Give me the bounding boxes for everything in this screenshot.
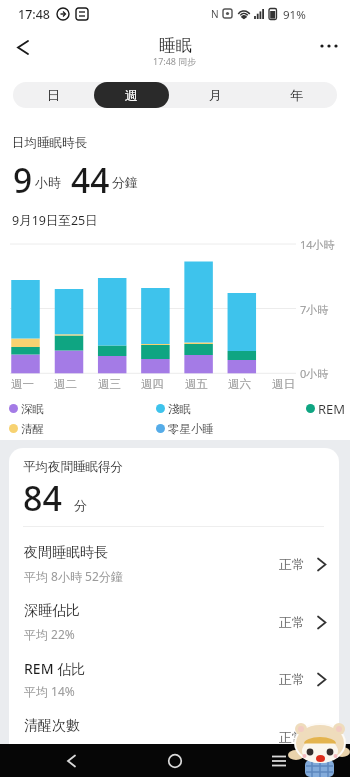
staticText: 正常 — [279, 614, 305, 630]
staticText: 零星小睡 — [168, 422, 214, 436]
staticText: 週 — [125, 87, 138, 103]
staticText: 平均 22% — [24, 626, 75, 642]
staticText: 分鐘 — [112, 174, 138, 190]
button[interactable]: 週 — [94, 82, 175, 108]
staticText: 夜間睡眠時長 — [24, 544, 108, 562]
button[interactable] — [259, 744, 299, 777]
staticText: 平均夜間睡眠得分 — [23, 459, 123, 475]
staticText: 正常 — [279, 729, 305, 745]
staticText: 年 — [290, 87, 303, 103]
staticText: 分 — [74, 497, 87, 513]
staticText: REM 佔比 — [24, 659, 86, 678]
staticText: 週六 — [228, 377, 251, 391]
staticText: 日 — [47, 87, 60, 103]
staticText: 0小時 — [300, 366, 329, 381]
staticText: 淺眠 — [168, 402, 191, 416]
staticText: 正常 — [279, 671, 305, 687]
staticText: 平均 14% — [24, 683, 75, 699]
button[interactable] — [51, 744, 91, 777]
staticText: 正常 — [279, 556, 305, 572]
staticText: 睡眠 — [159, 35, 192, 56]
staticText: 週四 — [141, 377, 164, 391]
staticText: 日均睡眠時長 — [12, 135, 87, 151]
button[interactable]: 年 — [256, 82, 337, 108]
button[interactable]: 日 — [13, 82, 94, 108]
staticText: 84 — [23, 475, 62, 521]
staticText: 17:48 同步 — [153, 55, 197, 67]
staticText: 9 — [13, 157, 33, 197]
staticText: REM — [318, 400, 346, 418]
staticText: 週三 — [98, 377, 121, 391]
staticText: 深眠 — [21, 402, 44, 416]
button[interactable]: REM 佔比 — [9, 645, 339, 703]
staticText: 14小時 — [300, 237, 335, 252]
staticText: 平均 8小時 52分鐘 — [24, 568, 123, 584]
button[interactable] — [155, 744, 195, 777]
staticText: 月 — [209, 87, 222, 103]
staticText: N — [211, 7, 219, 21]
staticText: 小時 — [35, 174, 61, 190]
button[interactable] — [6, 34, 38, 60]
staticText: 91% — [283, 7, 306, 23]
button[interactable]: 月 — [175, 82, 256, 108]
staticText: 週日 — [272, 377, 295, 391]
staticText: 清醒次數 — [24, 717, 80, 735]
button[interactable]: 夜間睡眠時長 — [9, 530, 339, 588]
staticText: 週五 — [185, 377, 208, 391]
staticText: 44 — [71, 157, 110, 197]
staticText: 清醒 — [21, 422, 44, 436]
staticText: 17:48 — [18, 6, 51, 23]
button[interactable] — [314, 34, 344, 58]
button[interactable]: 清醒次數 — [9, 703, 339, 761]
staticText: 9月19日至25日 — [12, 212, 98, 229]
staticText: 週二 — [54, 377, 77, 391]
staticText: 週一 — [11, 377, 34, 391]
button[interactable]: 深睡佔比 — [9, 588, 339, 646]
staticText: 深睡佔比 — [24, 602, 80, 620]
staticText: 7小時 — [300, 302, 329, 317]
